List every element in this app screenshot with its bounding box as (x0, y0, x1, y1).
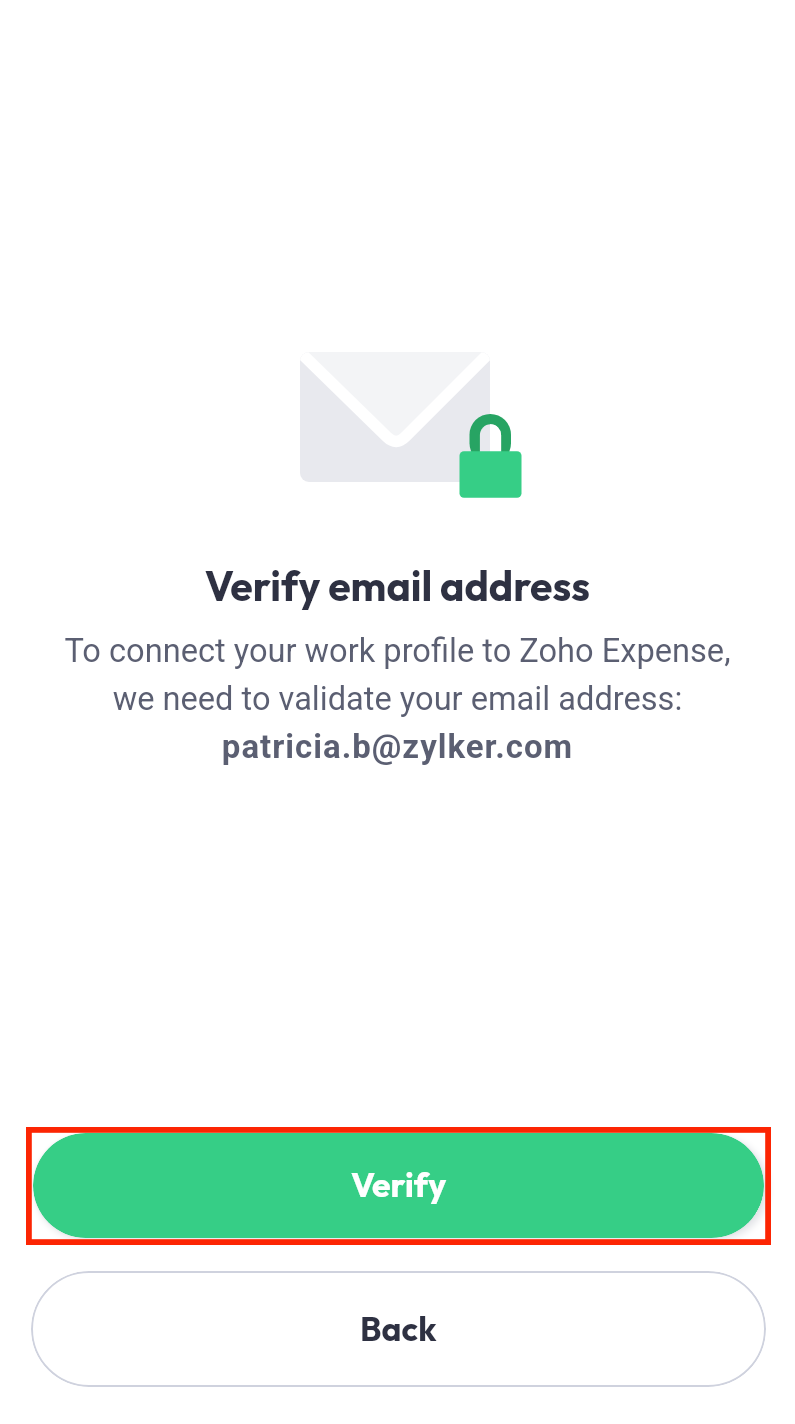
button[interactable]: Back (31, 1271, 766, 1387)
staticText: To connect your work profile to Zoho Exp… (0, 632, 795, 718)
staticText: Verify email address (0, 560, 795, 612)
staticText: Verify (351, 1163, 447, 1206)
staticText: Back (360, 1307, 437, 1349)
staticText: patricia.b@zylker.com (0, 727, 795, 766)
button[interactable]: Verify (33, 1133, 764, 1238)
